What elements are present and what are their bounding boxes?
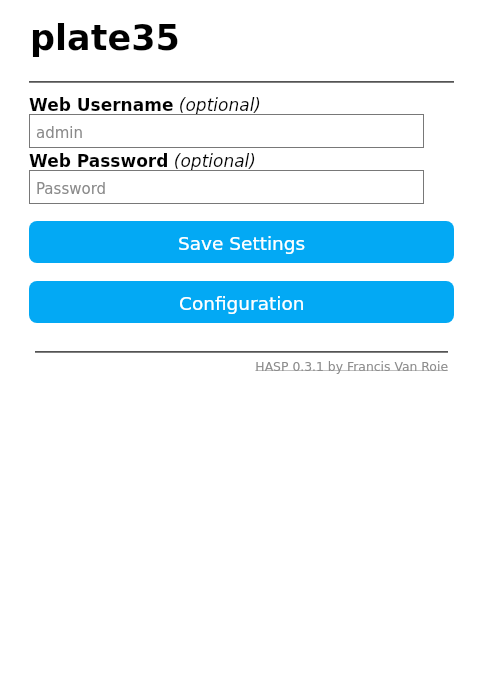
staticText: plate35 [30,18,180,59]
staticText: Web Password (optional) [29,151,256,171]
staticText: Password [36,180,107,197]
staticText: Configuration [179,293,305,315]
staticText: HASP 0.3.1 by Francis Van Roie [29,359,448,373]
staticText: admin [36,124,83,141]
button[interactable]: admin [29,114,424,148]
button[interactable]: Password [29,170,424,204]
staticText: Web Username (optional) [29,95,261,115]
staticText: Save Settings [178,233,306,255]
button[interactable]: Save Settings [29,221,454,263]
button[interactable]: Configuration [29,281,454,323]
